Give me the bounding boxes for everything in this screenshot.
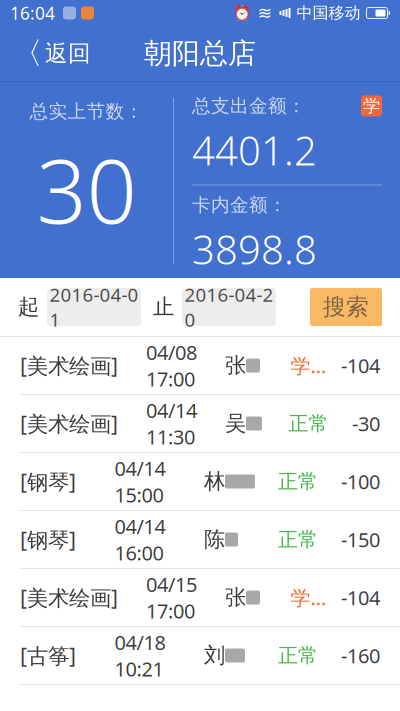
staticText: 学 [363, 95, 380, 117]
staticText: -30 [352, 410, 380, 437]
button[interactable]: 搜索 [310, 288, 382, 326]
staticText: 止 [153, 294, 174, 320]
button[interactable]: [古筝] [0, 627, 400, 684]
staticText: -100 [341, 468, 380, 495]
staticText: [美术绘画] [20, 583, 118, 612]
staticText: 林 [204, 468, 225, 495]
staticText: 正常 [278, 643, 318, 668]
staticText: [美术绘画] [20, 351, 118, 380]
staticText: 04/08 17:00 [146, 339, 197, 392]
button[interactable]: 2016-04-01 [47, 288, 141, 326]
staticText: 总支出金额： [192, 94, 306, 117]
staticText: 总实上节数： [29, 100, 143, 123]
staticText: 张 [225, 584, 246, 611]
staticText: 朝阳总店 [144, 36, 256, 71]
staticText: ⏰ [232, 5, 250, 21]
button[interactable]: [钢琴] [0, 511, 400, 568]
staticText: 陈 [204, 526, 225, 553]
staticText: ≋ [257, 3, 272, 23]
staticText: 2016-04-20 [184, 282, 273, 332]
staticText: 正常 [288, 411, 328, 436]
staticText: 2016-04-01 [49, 282, 138, 332]
staticText: 卡内金额： [192, 193, 287, 216]
staticText: 04/14 16:00 [114, 513, 165, 566]
staticText: 16:04 [10, 1, 55, 24]
button[interactable]: 2016-04-20 [182, 288, 276, 326]
staticText: -104 [341, 352, 380, 379]
staticText: [美术绘画] [20, 409, 118, 438]
staticText: 中国移动 [296, 3, 360, 23]
staticText: 搜索 [323, 293, 369, 321]
staticText: 3898.8 [192, 222, 317, 275]
staticText: [钢琴] [20, 525, 76, 554]
button[interactable]: [美术绘画] [0, 395, 400, 452]
button[interactable]: 学员 [361, 95, 382, 116]
staticText: -104 [341, 584, 380, 611]
button[interactable]: [钢琴] [0, 453, 400, 510]
staticText: 30 [36, 131, 136, 248]
staticText: -150 [341, 526, 380, 553]
staticText: -160 [341, 642, 380, 669]
staticText: [古筝] [20, 641, 76, 670]
staticText: 04/14 15:00 [114, 455, 165, 508]
staticText: 返回 [45, 40, 91, 67]
staticText: 起 [18, 294, 39, 320]
button[interactable]: [美术绘画] [0, 569, 400, 626]
staticText: 〈 [12, 35, 43, 72]
staticText: [钢琴] [20, 467, 76, 496]
staticText: 04/14 11:30 [146, 397, 197, 450]
staticText: 学… [290, 584, 326, 611]
staticText: 04/18 10:21 [114, 629, 165, 682]
staticText: 学… [290, 352, 326, 379]
staticText: 04/15 17:00 [146, 571, 197, 624]
staticText: 正常 [278, 527, 318, 552]
staticText: 吴 [225, 410, 246, 437]
staticText: 张 [225, 352, 246, 379]
staticText: 正常 [278, 469, 318, 494]
button[interactable]: [美术绘画] [0, 337, 400, 394]
button[interactable]: 〈 [0, 26, 103, 80]
staticText: 4401.2 [192, 123, 317, 176]
staticText: 刘 [204, 642, 225, 669]
